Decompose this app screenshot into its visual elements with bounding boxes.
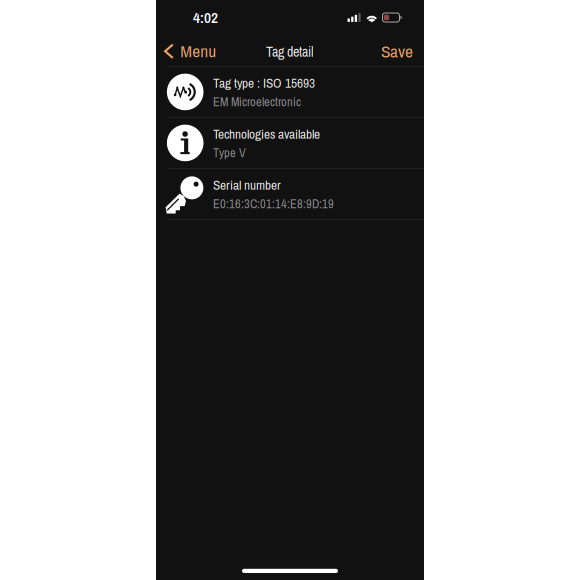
staticText: Save: [381, 40, 413, 63]
staticText: Type V: [213, 144, 246, 161]
staticText: Menu: [180, 39, 216, 63]
staticText: Tag type : ISO 15693: [213, 74, 315, 92]
button[interactable]: Serial number: [156, 169, 424, 220]
button[interactable]: Menu: [156, 33, 223, 69]
staticText: EM Microelectronic: [213, 93, 301, 110]
staticText: Serial number: [213, 176, 281, 194]
staticText: Technologies available: [213, 125, 320, 143]
staticText: E0:16:3C:01:14:E8:9D:19: [213, 195, 334, 212]
button[interactable]: Technologies available: [156, 118, 424, 169]
button[interactable]: Tag type : ISO 15693: [156, 67, 424, 118]
staticText: 4:02: [193, 7, 218, 28]
button[interactable]: Save: [370, 34, 424, 69]
staticText: Tag detail: [266, 42, 314, 61]
